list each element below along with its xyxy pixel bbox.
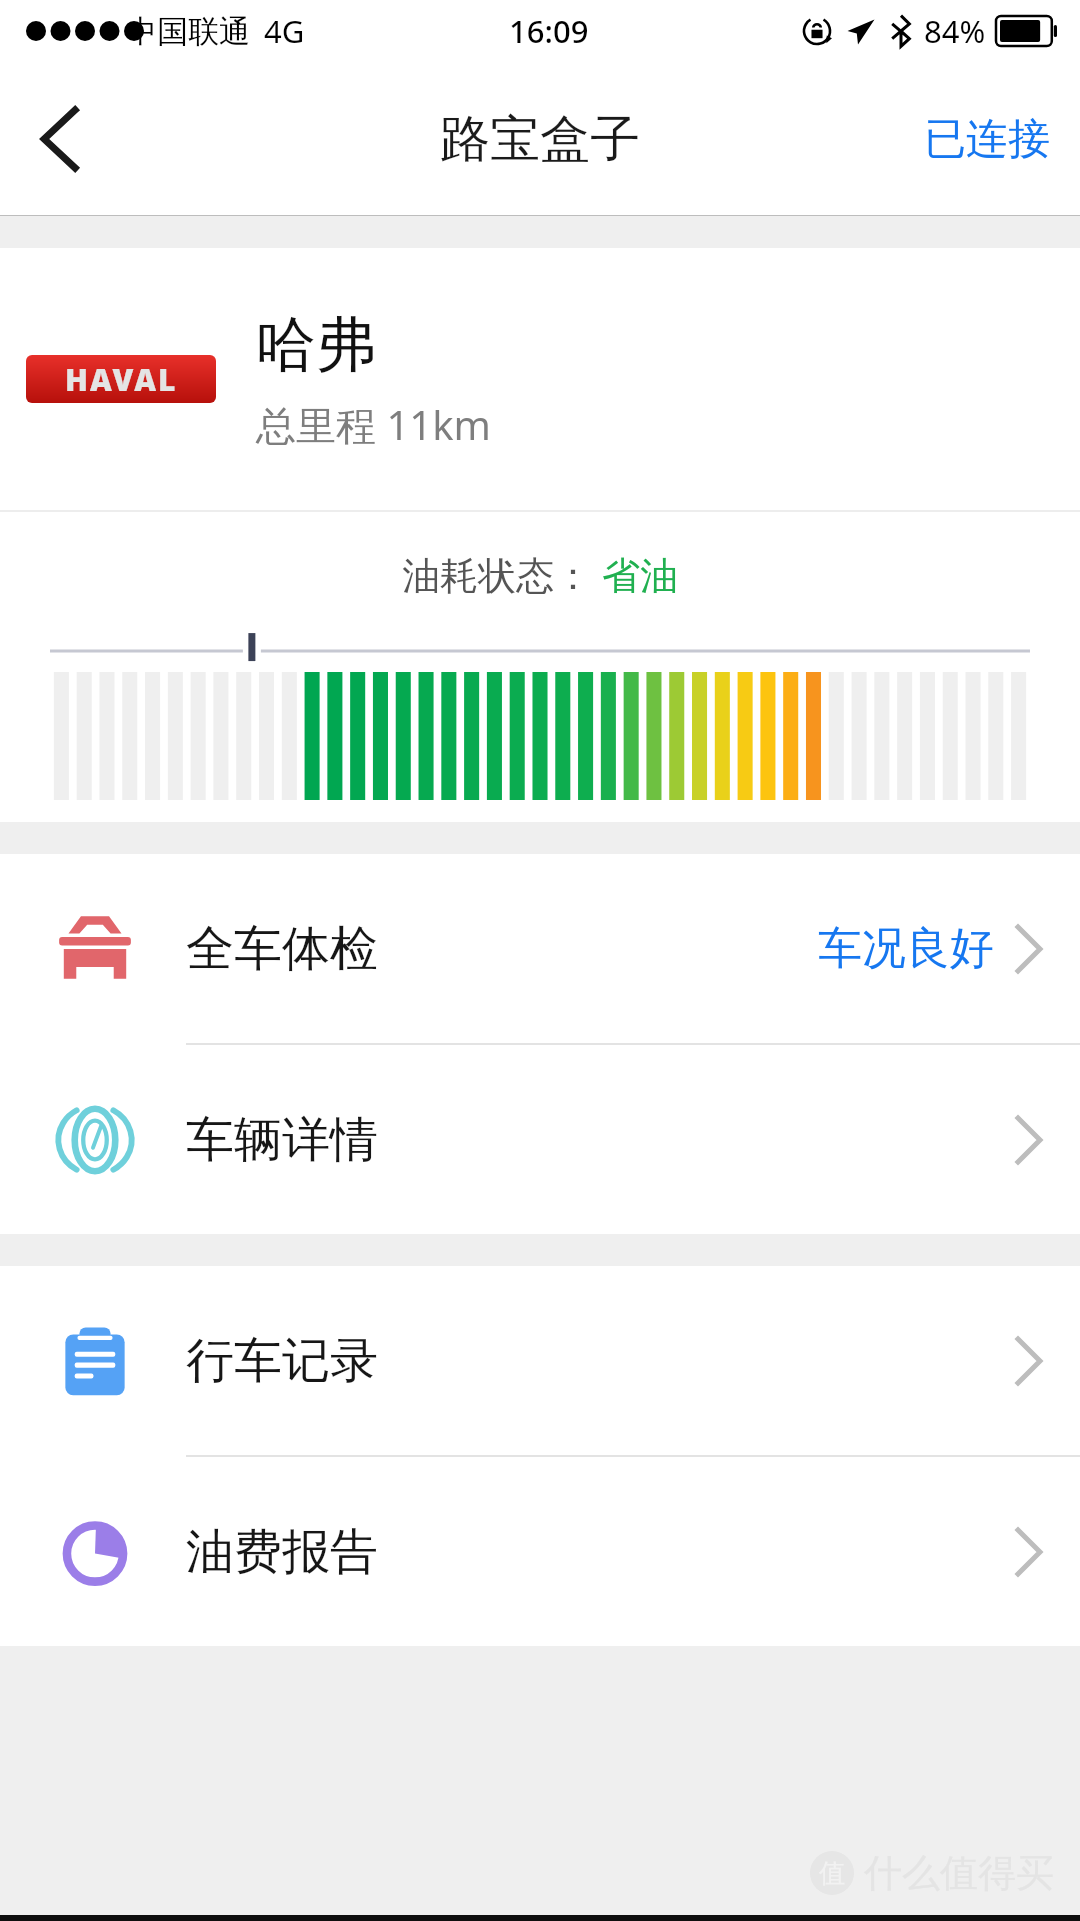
staticText: 总里程 11km bbox=[256, 397, 491, 452]
staticText: 车况良好 bbox=[818, 921, 994, 976]
button[interactable]: 车辆详情 bbox=[0, 1045, 1080, 1234]
staticText: 路宝盒子 bbox=[440, 108, 640, 171]
button[interactable]: Back bbox=[0, 79, 120, 199]
staticText: 16:09 bbox=[509, 10, 589, 52]
button[interactable]: 已连接 bbox=[916, 99, 1058, 180]
staticText: 已连接 bbox=[924, 113, 1050, 166]
button[interactable]: 油费报告 bbox=[0, 1457, 1080, 1646]
button[interactable]: 行车记录 bbox=[0, 1266, 1080, 1455]
staticText: 中国联通 bbox=[126, 12, 250, 51]
button[interactable]: HAVAL bbox=[0, 248, 1080, 510]
staticText: 4G bbox=[264, 10, 305, 52]
staticText: 值 bbox=[819, 1857, 845, 1890]
staticText: HAVAL bbox=[65, 359, 178, 400]
staticText: 全车体检 bbox=[186, 919, 378, 979]
button[interactable]: 全车体检 bbox=[0, 854, 1080, 1043]
staticText: 行车记录 bbox=[186, 1331, 378, 1391]
staticText: 车辆详情 bbox=[186, 1110, 378, 1170]
staticText: 省油 bbox=[602, 552, 678, 600]
staticText: 84% bbox=[924, 10, 986, 52]
staticText: 什么值得买 bbox=[864, 1849, 1054, 1897]
staticText: 油费报告 bbox=[186, 1522, 378, 1582]
staticText: 哈弗 bbox=[256, 307, 376, 383]
staticText: 油耗状态： bbox=[402, 552, 592, 600]
